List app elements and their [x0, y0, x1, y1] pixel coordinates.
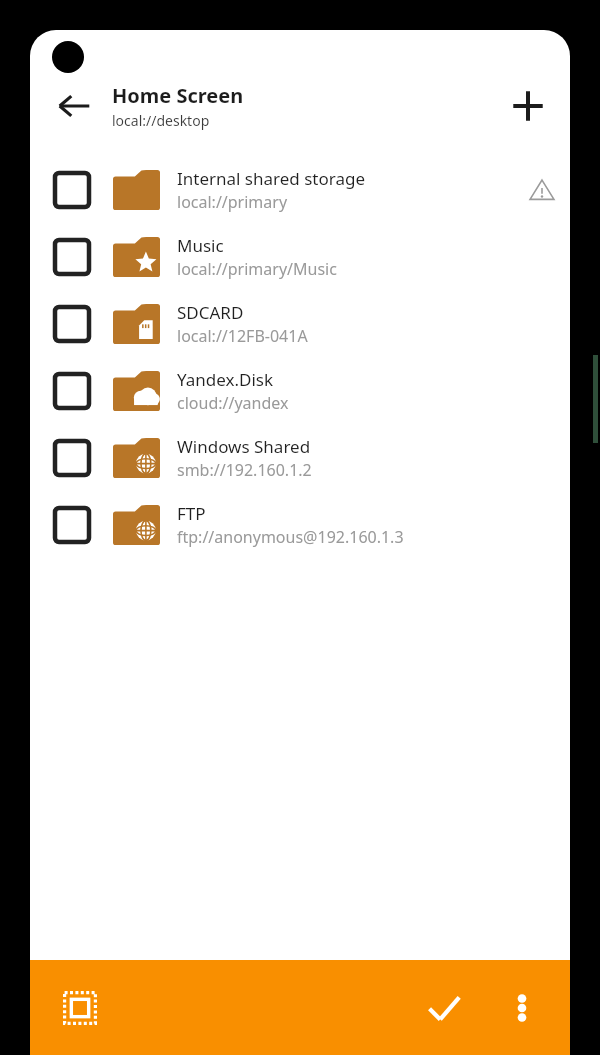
staticText: Music — [177, 234, 224, 257]
staticText: Windows Shared — [177, 435, 311, 458]
staticText: local://12FB-041A — [177, 325, 308, 347]
staticText: ftp://anonymous@192.160.1.3 — [177, 526, 404, 548]
button[interactable]: Select Windows Shared — [30, 424, 570, 491]
staticText: local://desktop — [112, 111, 210, 130]
staticText: local://primary/Music — [177, 258, 337, 280]
button[interactable]: Confirm — [414, 978, 474, 1038]
button[interactable]: Back — [48, 80, 100, 132]
button[interactable]: Select SDCARD — [30, 290, 570, 357]
button[interactable]: More options — [496, 982, 548, 1034]
button[interactable]: Select FTP — [30, 491, 570, 558]
button[interactable]: Select Yandex.Disk — [55, 374, 89, 408]
button[interactable]: Add — [502, 80, 554, 132]
button[interactable]: Select Internal shared storage — [30, 156, 570, 223]
button[interactable]: Select SDCARD — [55, 307, 89, 341]
button[interactable]: Select FTP — [55, 508, 89, 542]
staticText: Internal shared storage — [177, 167, 366, 190]
button[interactable]: Select Yandex.Disk — [30, 357, 570, 424]
button[interactable]: Select Music — [55, 240, 89, 274]
button[interactable]: Select all — [52, 980, 108, 1036]
staticText: cloud://yandex — [177, 392, 289, 414]
button[interactable]: Select Windows Shared — [55, 441, 89, 475]
button[interactable]: Select Music — [30, 223, 570, 290]
staticText: Yandex.Disk — [177, 368, 274, 391]
button[interactable]: Select Internal shared storage — [55, 173, 89, 207]
staticText: Home Screen — [112, 82, 244, 109]
staticText: local://primary — [177, 191, 288, 213]
staticText: smb://192.160.1.2 — [177, 459, 312, 481]
staticText: SDCARD — [177, 301, 244, 324]
staticText: FTP — [177, 502, 206, 525]
